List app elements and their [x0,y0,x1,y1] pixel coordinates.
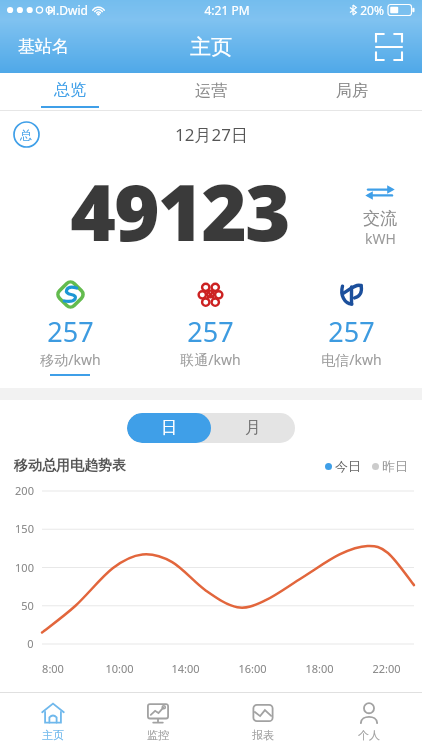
staticText: 报表 [252,728,274,742]
button[interactable]: 运营 [140,73,281,111]
staticText: 局房 [336,81,368,101]
staticText: 月 [245,418,261,438]
button[interactable]: 总览 [0,73,140,111]
staticText: 个人 [358,728,380,742]
staticText: 12月27日 [175,123,248,146]
staticText: 150 [15,521,34,536]
staticText: 257 [187,313,234,350]
button[interactable]: 257 [281,277,422,376]
staticText: 主页 [42,728,64,742]
staticText: 49123 [70,158,289,264]
button[interactable]: 日 [127,413,211,443]
staticText: 今日 [335,458,361,474]
staticText: 总览 [54,80,86,100]
staticText: 日 [161,418,177,438]
staticText: 基站名 [18,36,69,57]
staticText: 主页 [190,34,232,60]
staticText: 运营 [195,81,227,101]
staticText: 200 [15,483,34,498]
staticText: 50 [21,598,34,613]
button[interactable]: 报表 [210,693,316,750]
button[interactable]: Scan QR code [368,26,410,68]
button[interactable]: 月 [211,413,295,443]
button[interactable]: 局房 [281,73,422,111]
staticText: 257 [47,313,94,350]
button[interactable]: 监控 [105,693,210,750]
staticText: 电信/kwh [321,350,382,369]
staticText: 4:21 PM [204,2,250,18]
staticText: kWH [365,229,396,248]
button[interactable]: 257 [0,277,140,378]
staticText: 移动总用电趋势表 [14,457,126,475]
button[interactable]: 基站名 [8,28,79,65]
button[interactable]: 主页 [0,693,105,750]
staticText: 联通/kwh [180,350,241,369]
staticText: 257 [328,313,375,350]
button[interactable]: Total overview [9,117,43,151]
staticText: 20% [360,2,384,18]
staticText: 监控 [147,728,169,742]
button[interactable]: 257 [140,277,281,376]
staticText: 移动/kwh [40,350,101,369]
button[interactable]: 个人 [316,693,422,750]
staticText: 总 [20,127,32,142]
staticText: H.Dwid [47,2,88,18]
staticText: 昨日 [382,458,408,474]
staticText: 16:00 [238,661,267,676]
staticText: 0 [27,636,34,651]
staticText: 100 [15,560,34,575]
staticText: 10:00 [105,661,134,676]
staticText: 22:00 [372,661,401,676]
staticText: 交流 [363,208,397,229]
staticText: 8:00 [42,661,64,676]
staticText: 18:00 [305,661,334,676]
staticText: 14:00 [171,661,200,676]
